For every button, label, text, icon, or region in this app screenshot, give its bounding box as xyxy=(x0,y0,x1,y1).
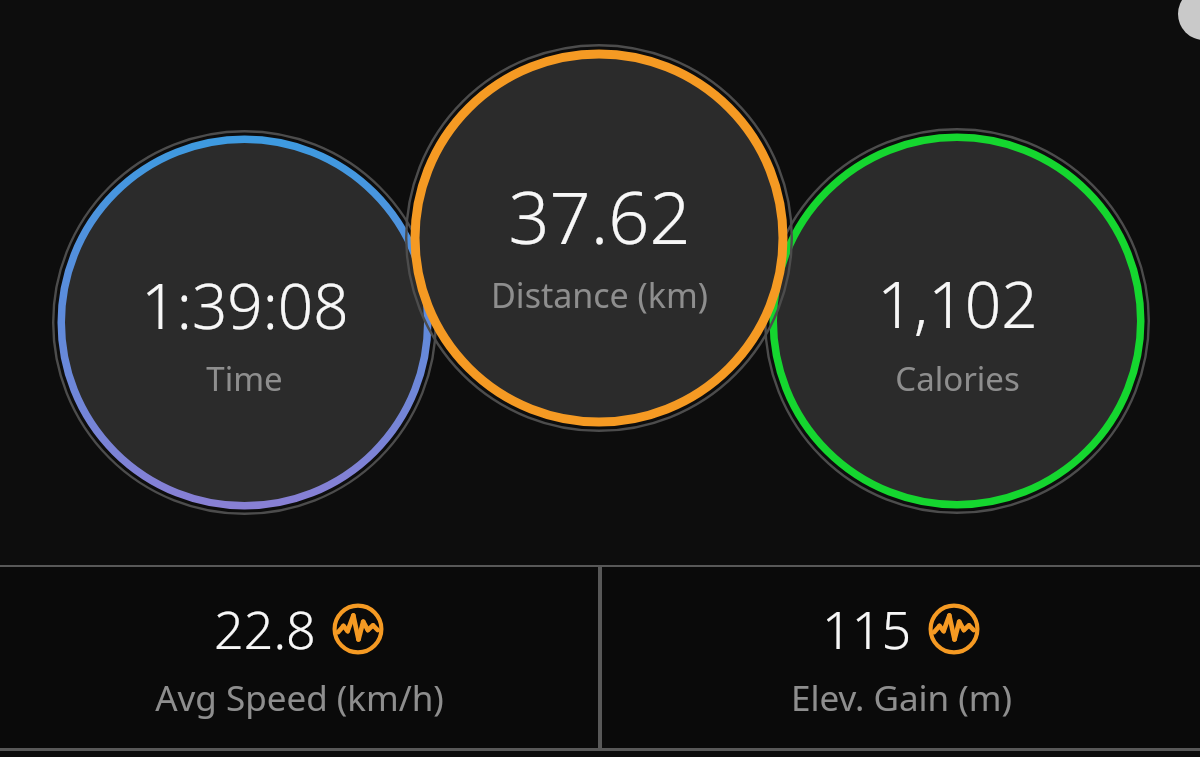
staticText: 37.62 xyxy=(508,167,691,265)
staticText: 115 xyxy=(822,593,912,664)
button[interactable]: 115 xyxy=(602,567,1200,748)
button[interactable]: Calories 1102 xyxy=(764,128,1150,514)
other: Heart rate xyxy=(928,603,980,655)
staticText: Avg Speed (km/h) xyxy=(155,674,444,722)
staticText: Time xyxy=(206,356,283,401)
button[interactable]: Distance 37.62 kilometres xyxy=(405,44,793,432)
staticText: 1:39:08 xyxy=(141,263,349,347)
staticText: Distance (km) xyxy=(491,272,708,318)
staticText: 22.8 xyxy=(214,593,316,664)
staticText: Calories xyxy=(895,356,1020,401)
button[interactable]: Time 1 hour 39 minutes 8 seconds xyxy=(52,130,437,515)
other: Heart rate xyxy=(332,603,384,655)
staticText: 1,102 xyxy=(877,260,1038,347)
button[interactable]: 22.8 xyxy=(0,567,598,748)
staticText: Elev. Gain (m) xyxy=(791,674,1012,722)
